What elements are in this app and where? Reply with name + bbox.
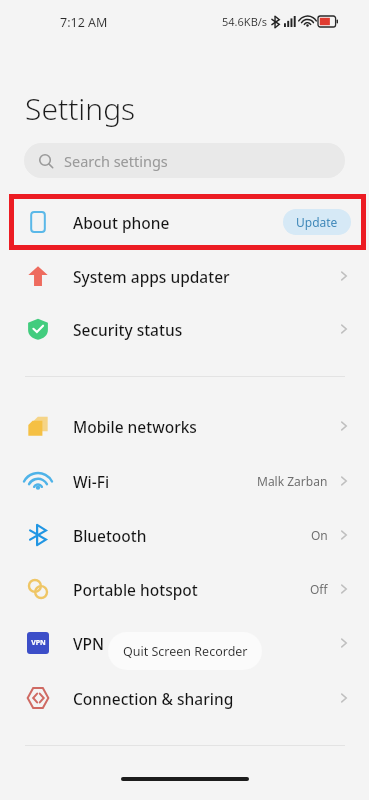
staticText: Portable hotspot [73,579,198,600]
staticText: Update [296,214,338,230]
other: About phone [27,211,49,233]
staticText: Quit Screen Recorder [123,643,248,660]
button[interactable]: VPN [0,616,369,670]
staticText: VPN [73,633,105,654]
button[interactable]: System apps updater [0,249,369,303]
button[interactable]: Connection & sharing [0,671,369,725]
staticText: Off [310,581,328,597]
button[interactable]: Update [283,209,351,235]
button[interactable]: Bluetooth [0,508,369,562]
button[interactable]: About phone [0,195,369,249]
staticText: On [311,527,328,543]
button[interactable]: Search settings [24,143,345,178]
button[interactable]: Mobile networks [0,399,369,453]
staticText: Mobile networks [73,416,197,437]
staticText: System apps updater [73,266,230,287]
button[interactable]: Portable hotspot [0,562,369,616]
staticText: Search settings [64,151,168,171]
staticText: About phone [73,212,170,233]
staticText: 7:12 AM [60,14,108,31]
staticText: Malk Zarban [257,473,328,489]
button[interactable]: Security status [0,302,369,356]
staticText: 54.6KB/s [222,14,268,29]
staticText: Connection & sharing [73,688,234,709]
staticText: Wi-Fi [73,471,110,492]
staticText: VPN [31,638,46,648]
staticText: Settings [25,88,136,129]
staticText: Security status [73,319,183,340]
staticText: Bluetooth [73,525,147,546]
button[interactable]: Wi-Fi [0,454,369,508]
